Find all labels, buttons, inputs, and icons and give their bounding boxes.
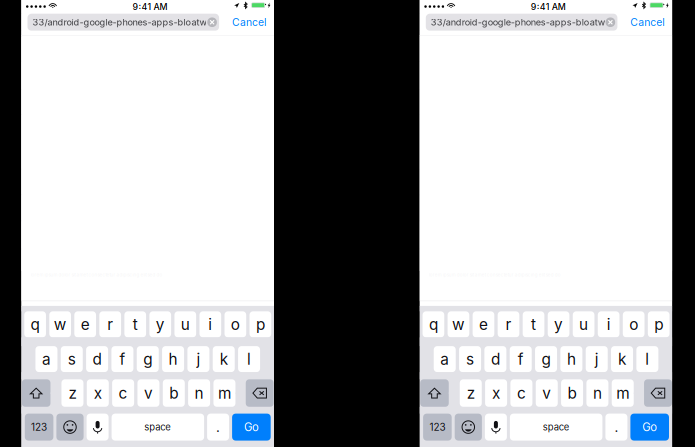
- button[interactable]: d: [86, 346, 108, 372]
- button[interactable]: z: [61, 379, 83, 407]
- button[interactable]: q: [24, 311, 46, 337]
- button[interactable]: e: [473, 311, 494, 337]
- button[interactable]: u: [573, 311, 594, 337]
- button[interactable]: n: [586, 379, 608, 407]
- button[interactable]: p: [249, 311, 271, 337]
- button[interactable]: g: [535, 346, 557, 372]
- button[interactable]: q: [423, 311, 444, 337]
- button[interactable]: s: [459, 346, 481, 372]
- button[interactable]: w: [49, 311, 71, 337]
- staticText: u: [181, 315, 190, 334]
- button[interactable]: o: [224, 311, 246, 337]
- button[interactable]: h: [162, 346, 184, 372]
- staticText: r: [505, 315, 511, 334]
- button[interactable]: l: [636, 346, 658, 372]
- staticText: v: [542, 384, 551, 402]
- staticText: a: [440, 350, 449, 368]
- button[interactable]: t: [124, 311, 146, 337]
- button[interactable]: Shift: [420, 379, 449, 407]
- staticText: z: [467, 384, 475, 402]
- staticText: q: [429, 315, 438, 334]
- button[interactable]: i: [598, 311, 619, 337]
- button[interactable]: t: [523, 311, 544, 337]
- staticText: r: [107, 315, 113, 334]
- staticText: t: [133, 315, 138, 334]
- button[interactable]: 33/android-google-phones-apps-bloatware: [27, 14, 219, 31]
- button[interactable]: v: [536, 379, 558, 407]
- button[interactable]: Go: [232, 414, 271, 441]
- button[interactable]: x: [87, 379, 109, 407]
- button[interactable]: Cancel: [629, 14, 667, 31]
- button[interactable]: y: [149, 311, 171, 337]
- button[interactable]: 33/android-google-phones-apps-bloatware: [426, 14, 617, 31]
- button[interactable]: space: [112, 414, 204, 441]
- button[interactable]: .: [207, 414, 229, 441]
- button[interactable]: c: [112, 379, 134, 407]
- button[interactable]: a: [35, 346, 57, 372]
- button[interactable]: h: [560, 346, 582, 372]
- button[interactable]: g: [137, 346, 159, 372]
- staticText: t: [531, 315, 536, 334]
- button[interactable]: v: [137, 379, 159, 407]
- staticText: l: [645, 350, 649, 368]
- button[interactable]: Shift: [22, 379, 50, 407]
- button[interactable]: b: [561, 379, 583, 407]
- staticText: .: [614, 419, 618, 435]
- button[interactable]: Emoji: [56, 414, 84, 441]
- button[interactable]: l: [238, 346, 260, 372]
- button[interactable]: o: [623, 311, 644, 337]
- staticText: p: [654, 315, 663, 334]
- staticText: g: [143, 350, 152, 368]
- button[interactable]: k: [213, 346, 235, 372]
- button[interactable]: c: [510, 379, 532, 407]
- button[interactable]: d: [484, 346, 506, 372]
- staticText: 33/android-google-phones-apps-bloatware: [431, 17, 618, 28]
- button[interactable]: Dictation: [485, 414, 507, 441]
- staticText: b: [169, 384, 178, 402]
- button[interactable]: y: [548, 311, 569, 337]
- button[interactable]: s: [61, 346, 83, 372]
- staticText: s: [68, 350, 76, 368]
- button[interactable]: b: [163, 379, 185, 407]
- staticText: p: [256, 315, 265, 334]
- button[interactable]: e: [74, 311, 96, 337]
- button[interactable]: z: [460, 379, 482, 407]
- button[interactable]: Emoji: [455, 414, 482, 441]
- staticText: i: [208, 315, 212, 334]
- button[interactable]: p: [648, 311, 669, 337]
- staticText: o: [231, 315, 240, 334]
- button[interactable]: i: [199, 311, 221, 337]
- button[interactable]: Go: [630, 414, 669, 441]
- button[interactable]: u: [174, 311, 196, 337]
- button[interactable]: Delete: [644, 379, 672, 407]
- button[interactable]: m: [612, 379, 634, 407]
- staticText: 9:41 AM: [132, 1, 167, 12]
- button[interactable]: r: [99, 311, 121, 337]
- staticText: v: [144, 384, 153, 402]
- button[interactable]: Delete: [246, 379, 274, 407]
- button[interactable]: Dictation: [87, 414, 109, 441]
- staticText: w: [54, 315, 67, 334]
- button[interactable]: space: [510, 414, 602, 441]
- button[interactable]: k: [611, 346, 633, 372]
- button[interactable]: j: [586, 346, 608, 372]
- button[interactable]: n: [188, 379, 210, 407]
- button[interactable]: 123: [25, 414, 53, 441]
- button[interactable]: .: [605, 414, 627, 441]
- button[interactable]: f: [111, 346, 133, 372]
- button[interactable]: m: [213, 379, 235, 407]
- button[interactable]: Cancel: [230, 14, 268, 31]
- staticText: Cancel: [630, 16, 665, 29]
- button[interactable]: a: [434, 346, 456, 372]
- staticText: Cancel: [232, 16, 267, 29]
- button[interactable]: w: [448, 311, 469, 337]
- button[interactable]: f: [510, 346, 532, 372]
- button[interactable]: 123: [423, 414, 452, 441]
- button[interactable]: j: [187, 346, 209, 372]
- button[interactable]: r: [498, 311, 519, 337]
- button[interactable]: x: [485, 379, 507, 407]
- staticText: h: [169, 350, 178, 368]
- staticText: g: [541, 350, 550, 368]
- staticText: Go: [244, 420, 259, 434]
